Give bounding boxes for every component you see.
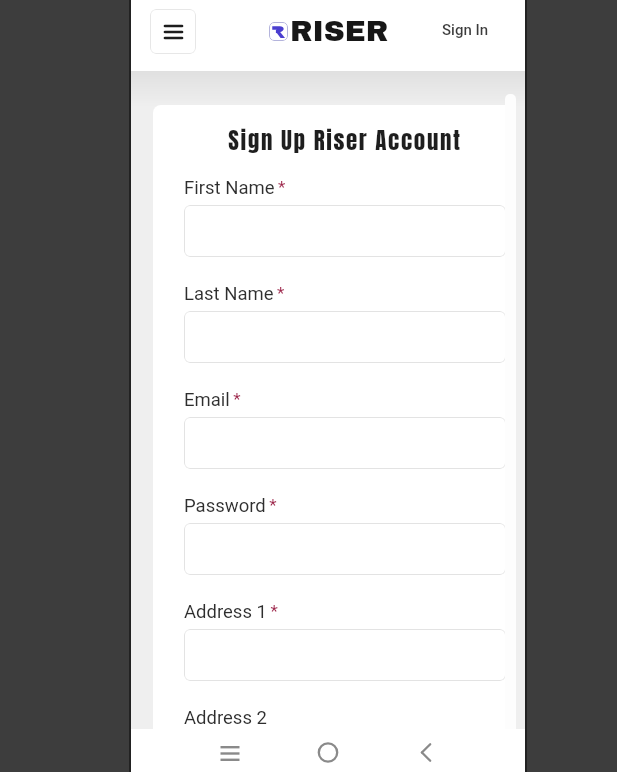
button[interactable]: Back (403, 729, 447, 772)
staticText: Last Name * (184, 283, 285, 305)
staticText: First Name * (184, 177, 286, 199)
staticText: Email * (184, 389, 241, 411)
staticText: Sign Up Riser Account (184, 123, 506, 158)
staticText: Address 1 * (184, 601, 278, 623)
button[interactable]: Home (306, 729, 350, 772)
button[interactable]: Recent apps (208, 729, 252, 772)
button[interactable] (184, 735, 506, 763)
button[interactable]: Open navigation menu (150, 9, 196, 54)
button[interactable] (184, 523, 506, 575)
button[interactable] (184, 629, 506, 681)
staticText: Password * (184, 495, 277, 517)
button[interactable] (184, 417, 506, 469)
button[interactable] (184, 311, 506, 363)
staticText: Address 2 (184, 707, 267, 729)
button[interactable]: Sign In (442, 21, 489, 39)
staticText: RISER (290, 16, 389, 48)
button[interactable] (184, 205, 506, 257)
